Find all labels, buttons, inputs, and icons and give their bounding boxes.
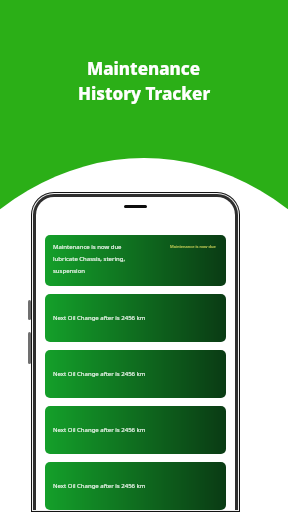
staticText: Maintenance is now due <box>170 244 216 249</box>
button[interactable]: Next Oil Change after is 2456 km <box>45 406 226 454</box>
staticText: lubricate Chassis, stering, <box>53 255 125 263</box>
staticText: Next Oil Change after is 2456 km <box>53 370 146 378</box>
staticText: Next Oil Change after is 2456 km <box>53 314 146 322</box>
staticText: Next Oil Change after is 2456 km <box>53 482 146 490</box>
staticText: Maintenance <box>87 57 201 80</box>
staticText: History Tracker <box>78 82 211 105</box>
staticText: Next Oil Change after is 2456 km <box>53 426 146 434</box>
button[interactable]: Maintenance is now due <box>45 235 226 286</box>
staticText: suspension <box>53 267 85 275</box>
button[interactable]: Next Oil Change after is 2456 km <box>45 294 226 342</box>
staticText: Maintenance is now due <box>53 243 122 251</box>
button[interactable]: Next Oil Change after is 2456 km <box>45 350 226 398</box>
button[interactable]: Next Oil Change after is 2456 km <box>45 462 226 510</box>
other: Phone side buttons <box>0 0 288 512</box>
